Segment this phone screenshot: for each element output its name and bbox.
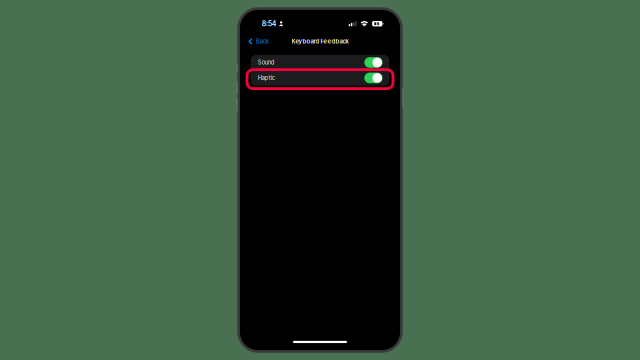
staticText: Sound (258, 59, 275, 66)
staticText: Keyboard Feedback (291, 38, 348, 45)
staticText: 8:54 (262, 19, 277, 28)
button[interactable]: Haptic (251, 70, 389, 86)
staticText: Back (256, 38, 269, 45)
staticText: Haptic (258, 74, 275, 81)
button[interactable]: Sound (251, 55, 389, 70)
button[interactable]: Back (245, 35, 272, 48)
